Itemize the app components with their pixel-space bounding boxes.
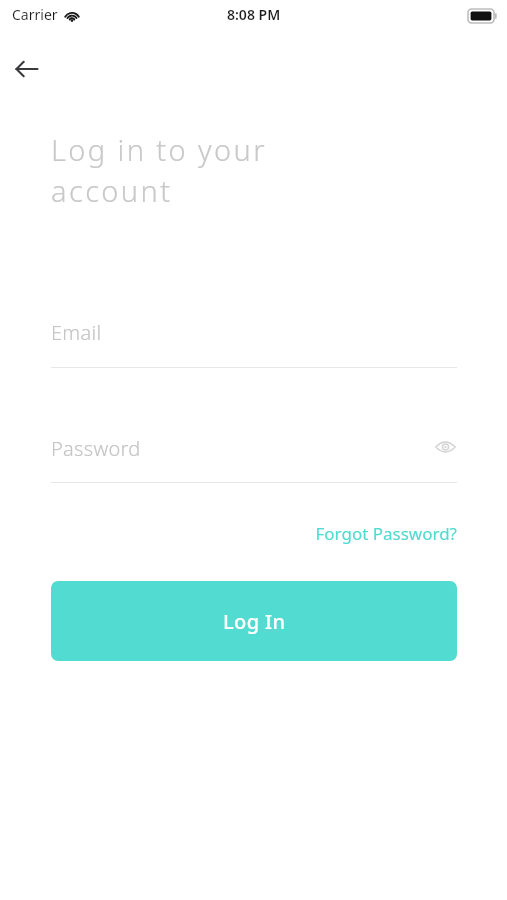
button[interactable]: Show password bbox=[427, 429, 463, 465]
staticText: Carrier bbox=[12, 5, 58, 24]
staticText: Email bbox=[51, 319, 102, 346]
button[interactable]: Forgot Password? bbox=[281, 515, 457, 551]
button[interactable]: Back bbox=[7, 49, 47, 89]
staticText: Password bbox=[51, 435, 141, 462]
staticText: 8:08 PM bbox=[227, 5, 281, 24]
staticText: Log in to your account bbox=[51, 130, 391, 211]
staticText: Log In bbox=[223, 608, 286, 635]
staticText: Forgot Password? bbox=[315, 522, 457, 545]
button[interactable]: Log In bbox=[51, 581, 457, 661]
button[interactable]: Password bbox=[51, 428, 457, 483]
button[interactable]: Email bbox=[51, 312, 457, 368]
